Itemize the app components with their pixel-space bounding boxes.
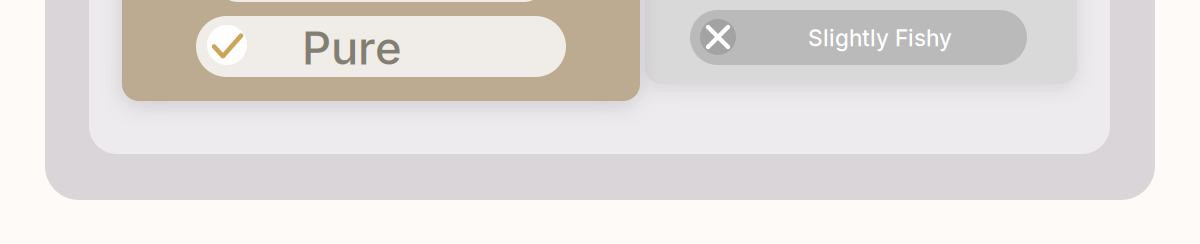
- button[interactable]: Pure: [196, 16, 566, 77]
- staticText: Pure: [302, 21, 402, 75]
- button[interactable]: Slightly Fishy: [690, 10, 1027, 65]
- staticText: Slightly Fishy: [808, 24, 952, 52]
